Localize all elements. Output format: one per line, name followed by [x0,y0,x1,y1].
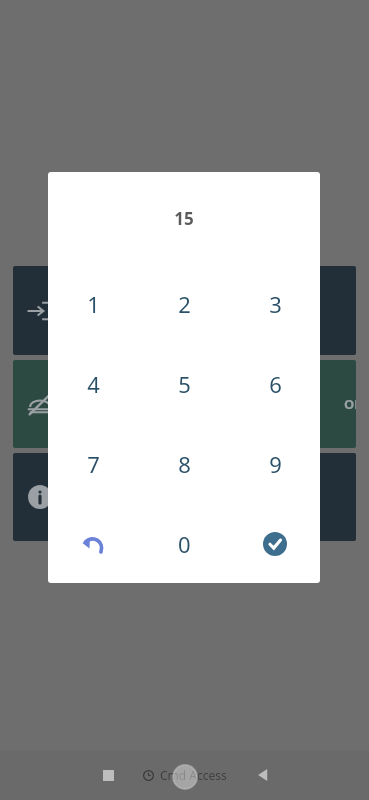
staticText: 9 [269,449,282,479]
button[interactable]: Back [243,755,283,795]
button[interactable]: 4 [64,355,122,413]
button[interactable]: 1 [64,275,122,333]
staticText: Cmd Access [160,767,227,783]
other: Login [27,298,53,324]
button[interactable]: Confirm [247,516,303,572]
button[interactable]: Login [13,266,356,355]
button[interactable]: 9 [246,435,304,493]
button[interactable]: Home [165,757,205,797]
staticText: 5 [178,369,191,399]
staticText: 4 [87,369,100,399]
button[interactable]: 7 [64,435,122,493]
staticText: 7 [87,449,100,479]
button[interactable]: Recent apps [88,755,128,795]
staticText: OD [344,395,356,413]
staticText: 15 [174,207,194,230]
staticText: 0 [178,529,191,559]
other: No food [27,391,53,417]
button[interactable]: 6 [246,355,304,413]
button[interactable]: Undo [65,516,121,572]
button[interactable]: 3 [246,275,304,333]
staticText: 3 [269,289,282,319]
staticText: 8 [178,449,191,479]
staticText: 6 [269,369,282,399]
button[interactable]: Information [13,453,356,541]
button[interactable]: 0 [156,516,212,572]
staticText: 1 [87,289,100,319]
other: Information [27,484,53,510]
button[interactable]: 5 [155,355,213,413]
button[interactable]: No food [13,360,356,448]
button[interactable]: 8 [155,435,213,493]
staticText: 2 [178,289,191,319]
button[interactable]: 2 [155,275,213,333]
